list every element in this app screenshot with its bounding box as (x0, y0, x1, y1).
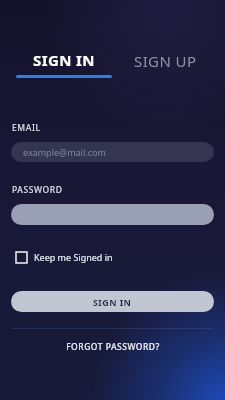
staticText: FORGOT PASSWORD? (66, 341, 160, 353)
staticText: Keep me Signed in (34, 251, 113, 263)
staticText: PASSWORD (12, 184, 63, 196)
staticText: SIGN UP (134, 56, 197, 71)
staticText: SIGN IN (33, 50, 95, 70)
button[interactable]: SIGN IN (12, 48, 116, 80)
button[interactable]: SIGN UP (130, 56, 201, 80)
button[interactable]: SIGN IN (11, 291, 214, 312)
staticText: EMAIL (12, 122, 41, 134)
button[interactable]: example@mail.com (11, 142, 214, 162)
button[interactable] (11, 204, 214, 225)
staticText: SIGN IN (93, 296, 132, 308)
staticText: example@mail.com (23, 146, 106, 158)
button[interactable]: Keep me Signed in (14, 249, 115, 265)
button[interactable]: FORGOT PASSWORD? (0, 341, 225, 353)
